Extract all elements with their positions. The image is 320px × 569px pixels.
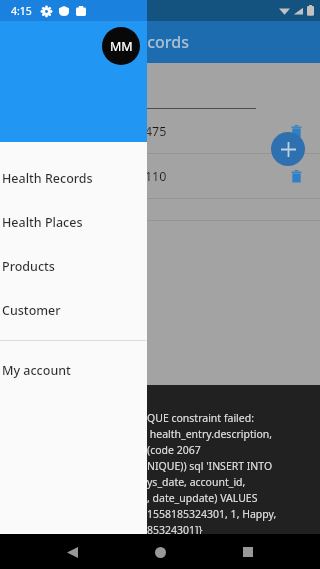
button[interactable]: Health Places xyxy=(0,200,147,244)
button[interactable]: My account xyxy=(0,348,147,392)
button[interactable]: MM xyxy=(102,27,140,65)
staticText: 4:15 xyxy=(11,4,32,18)
staticText: , date_update) VALUES xyxy=(147,491,258,505)
staticText: Products xyxy=(2,258,55,275)
staticText: NIQUE)) sql 'INSERT INTO xyxy=(147,459,273,473)
button[interactable]: Health Records xyxy=(0,156,147,200)
staticText: Health Records xyxy=(2,170,93,187)
staticText: 2019-05-18 16:15:24.751110 xyxy=(2,168,284,185)
staticText: My account xyxy=(2,362,71,379)
staticText: (code 2067 xyxy=(147,443,201,457)
staticText: Health Places xyxy=(2,214,83,231)
button[interactable]: Back xyxy=(57,537,87,567)
button[interactable]: Delete xyxy=(284,119,308,143)
staticText: 85324301]} xyxy=(147,523,203,534)
staticText: MM xyxy=(110,38,133,55)
staticText: QUE constraint failed: xyxy=(147,411,254,425)
button[interactable]: QUE constraint failed: xyxy=(0,385,320,534)
button[interactable]: Recents xyxy=(233,537,263,567)
staticText: 2019-05-18 16:15:23.726475 xyxy=(2,123,284,140)
button[interactable]: 2019-05-18 16:15:24.751110 xyxy=(0,154,320,198)
button[interactable]: Add record xyxy=(271,132,305,166)
staticText: Customer xyxy=(2,302,61,319)
button[interactable]: Customer xyxy=(0,288,147,332)
button[interactable]: 2019-05-18 16:15:23.726475 xyxy=(0,109,320,153)
staticText: 1558185324301, 1, Happy, xyxy=(147,507,277,521)
staticText: Health Records xyxy=(73,31,190,53)
button[interactable]: Delete xyxy=(284,164,308,188)
staticText: health_entry.description, xyxy=(147,427,273,441)
staticText: ys_date, account_id, xyxy=(147,475,246,489)
button[interactable]: Products xyxy=(0,244,147,288)
button[interactable]: Home xyxy=(145,537,175,567)
